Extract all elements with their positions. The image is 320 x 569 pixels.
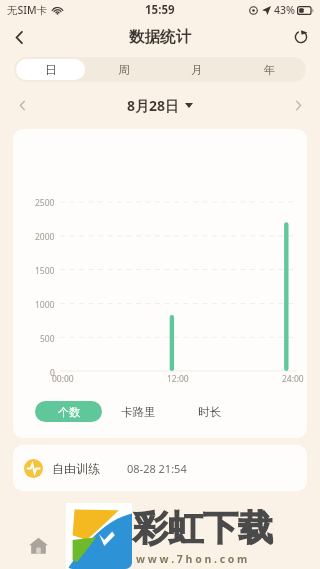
staticText: 数据统计 <box>129 27 191 47</box>
staticText: 时长 <box>198 405 221 419</box>
staticText: 00:00 <box>52 373 74 385</box>
button[interactable]: 时长 <box>175 401 243 422</box>
staticText: 12:00 <box>167 373 189 385</box>
button[interactable]: 年 <box>235 59 304 80</box>
button[interactable]: 周 <box>89 59 158 80</box>
button[interactable]: 日 <box>16 59 85 80</box>
button[interactable]: 卡路里 <box>102 401 175 422</box>
button[interactable]: Back <box>0 20 38 54</box>
staticText: 24:00 <box>282 373 304 385</box>
staticText: 日 <box>45 63 57 77</box>
staticText: w w w . 7 h o n . c o m <box>136 552 248 566</box>
staticText: 500 <box>40 333 55 345</box>
staticText: 彩虹下载 <box>133 506 273 550</box>
staticText: 8月28日 <box>127 96 180 115</box>
staticText: 月 <box>191 63 203 77</box>
staticText: 无SIM卡 <box>7 3 48 17</box>
button[interactable]: 个数 <box>35 401 102 422</box>
staticText: 周 <box>118 63 130 77</box>
staticText: 个数 <box>58 405 80 419</box>
staticText: 年 <box>264 63 276 77</box>
staticText: 2500 <box>35 197 55 209</box>
button[interactable]: Refresh <box>282 20 320 54</box>
button[interactable]: Previous day <box>8 92 36 118</box>
staticText: 卡路里 <box>121 405 156 419</box>
staticText: 1500 <box>35 265 55 277</box>
button[interactable]: 8月28日 <box>127 96 193 115</box>
staticText: 2000 <box>35 231 55 243</box>
staticText: 08-28 21:54 <box>127 461 187 476</box>
button[interactable]: 自由训练 <box>13 445 307 491</box>
staticText: 43% <box>274 3 295 17</box>
staticText: 0 <box>50 367 55 379</box>
button[interactable]: 月 <box>162 59 231 80</box>
staticText: 自由训练 <box>52 461 100 476</box>
button[interactable]: Home <box>21 528 55 562</box>
button[interactable]: Next day <box>284 92 312 118</box>
staticText: 1000 <box>35 299 55 311</box>
staticText: 15:59 <box>145 2 175 18</box>
